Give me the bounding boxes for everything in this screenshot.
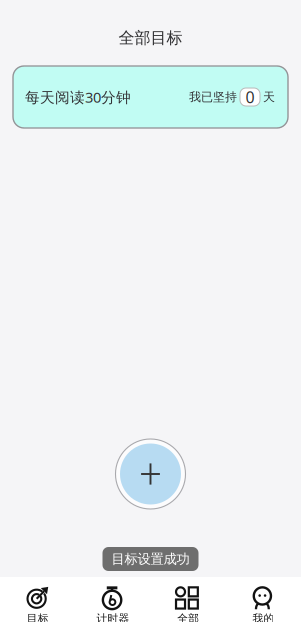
staticText: 全部目标 <box>118 28 182 48</box>
staticText: 天 <box>263 90 275 104</box>
button[interactable]: 目标 <box>0 574 75 622</box>
staticText: 0 <box>245 86 254 108</box>
staticText: 计时器 <box>96 612 129 622</box>
button[interactable]: 全部 <box>150 574 226 622</box>
staticText: 目标设置成功 <box>111 551 189 567</box>
staticText: 全部 <box>177 612 199 622</box>
staticText: 每天阅读30分钟 <box>25 87 131 107</box>
button[interactable]: 计时器 <box>75 574 150 622</box>
staticText: 我的 <box>252 612 274 622</box>
button[interactable]: Add goal <box>115 439 185 509</box>
button[interactable]: 我的 <box>226 574 301 622</box>
staticText: 目标 <box>27 612 49 622</box>
staticText: 我已坚持 <box>189 90 237 104</box>
